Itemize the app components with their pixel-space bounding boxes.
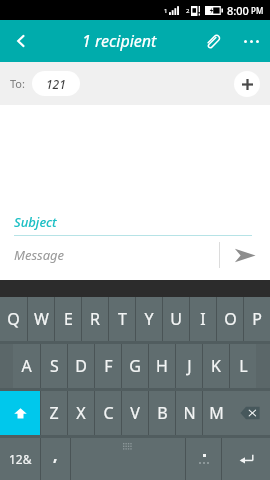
staticText: L [239,355,248,377]
staticText: Subject [14,213,57,231]
button[interactable]: O [217,297,243,341]
staticText: R [90,308,100,330]
staticText: , [53,444,58,466]
button[interactable]: Q [0,297,27,341]
staticText: Y [144,308,154,330]
button[interactable]: Z [41,391,67,435]
staticText: O [224,308,237,330]
button[interactable]: M [203,391,229,435]
staticText: 121 [46,76,66,92]
staticText: M [209,402,224,424]
button[interactable]: H [149,344,175,388]
staticText: S [50,355,59,377]
staticText: Message [14,246,65,264]
staticText: I [200,308,206,330]
staticText: To: [10,76,25,91]
staticText: W [34,308,49,330]
button[interactable]: I [190,297,216,341]
staticText: Q [7,308,20,330]
staticText: G [129,355,141,377]
button[interactable]: Backspace [229,391,270,435]
button[interactable]: G [122,344,148,388]
button[interactable]: S [41,344,67,388]
button[interactable]: , [41,438,70,480]
button[interactable]: C [95,391,121,435]
button[interactable]: J [176,344,202,388]
button[interactable]: 12& [0,438,40,480]
button[interactable] [186,438,221,480]
staticText: Z [49,402,59,424]
staticText: 8:00 [227,3,249,18]
button[interactable]: U [163,297,189,341]
button[interactable]: W [28,297,54,341]
button[interactable]: E [55,297,81,341]
staticText: 1 recipient [82,30,157,52]
staticText: C [103,402,114,424]
button[interactable]: D [68,344,94,388]
staticText: K [211,355,221,377]
button[interactable]: Add recipient [234,71,260,97]
staticText: D [75,355,87,377]
button[interactable]: Shift [0,391,40,435]
button[interactable]: V [122,391,148,435]
staticText: V [130,402,140,424]
button[interactable]: K [203,344,229,388]
button[interactable]: A [13,344,40,388]
staticText: F [104,355,113,377]
staticText: 12& [9,451,32,467]
button[interactable]: F [95,344,121,388]
button[interactable]: Attach [192,21,232,61]
staticText: A [21,355,32,377]
button[interactable]: L [230,344,256,388]
staticText: J [187,355,192,377]
button[interactable]: Back [0,20,42,62]
button[interactable]: R [82,297,108,341]
staticText: PM [251,5,264,16]
button[interactable]: P [244,297,270,341]
staticText: T [118,308,127,330]
staticText: U [170,308,182,330]
button[interactable]: Y [136,297,162,341]
staticText: E [64,308,73,330]
button[interactable]: T [109,297,135,341]
button[interactable]: Enter [222,438,270,480]
button[interactable]: Send [220,236,270,274]
staticText: 2 [186,7,190,15]
staticText: H [156,355,168,377]
button[interactable]: B [149,391,175,435]
button[interactable]: X [68,391,94,435]
staticText: P [252,308,262,330]
staticText: B [157,402,168,424]
button[interactable]: N [176,391,202,435]
button[interactable]: More options [232,22,270,60]
staticText: X [76,402,86,424]
button[interactable]: 121 [32,71,80,96]
staticText: 1 [164,7,168,15]
staticText: N [183,402,196,424]
